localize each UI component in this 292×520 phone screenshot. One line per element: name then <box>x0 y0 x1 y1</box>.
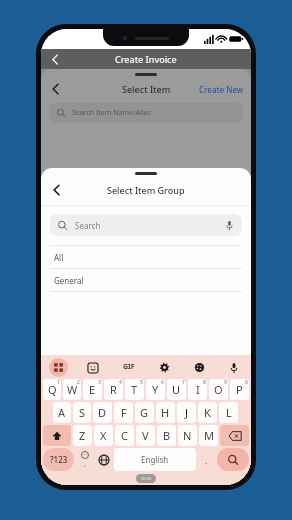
button[interactable]: Emoji <box>76 448 93 471</box>
staticText: I <box>196 382 200 397</box>
staticText: A <box>58 405 66 420</box>
button[interactable]: C <box>115 425 134 446</box>
staticText: 6 <box>161 379 164 386</box>
staticText: Search Item Name/Alias <box>72 108 151 118</box>
button[interactable]: Z <box>73 425 92 446</box>
button[interactable]: G <box>135 402 154 423</box>
staticText: N <box>183 428 192 443</box>
staticText: F <box>121 405 127 420</box>
button[interactable]: U <box>167 379 186 400</box>
button[interactable]: English <box>114 448 196 471</box>
staticText: General <box>54 275 84 286</box>
button[interactable]: D <box>93 402 112 423</box>
staticText: Select Item <box>122 83 171 95</box>
staticText: L <box>226 405 232 420</box>
button[interactable]: Backspace <box>220 425 249 446</box>
staticText: 3 <box>98 379 101 386</box>
button[interactable]: Create New <box>199 84 244 95</box>
button[interactable]: Keyboard modes <box>49 358 68 377</box>
staticText: , <box>84 459 86 469</box>
staticText: Select Item Group <box>107 184 185 196</box>
button[interactable]: Voice search <box>224 220 235 231</box>
button[interactable]: T <box>125 379 144 400</box>
staticText: 4 <box>119 379 122 386</box>
staticText: 1 <box>57 379 60 386</box>
staticText: V <box>142 428 149 443</box>
button[interactable]: X <box>94 425 113 446</box>
staticText: GIF <box>123 362 135 372</box>
button[interactable]: Change language <box>95 448 112 471</box>
staticText: R <box>110 382 117 397</box>
staticText: G <box>140 405 149 420</box>
staticText: H <box>161 405 170 420</box>
staticText: Z <box>79 428 86 443</box>
button[interactable]: Search <box>217 448 249 471</box>
button[interactable]: P <box>230 379 249 400</box>
staticText: 0 <box>245 379 248 386</box>
button[interactable]: ?123 <box>43 448 74 471</box>
staticText: 00:30 <box>141 476 152 481</box>
staticText: U <box>172 382 181 397</box>
button[interactable]: W <box>63 379 81 400</box>
staticText: Search <box>75 220 101 231</box>
button[interactable]: M <box>199 425 218 446</box>
staticText: English <box>141 454 169 465</box>
button[interactable]: N <box>178 425 197 446</box>
button[interactable]: All <box>41 246 251 268</box>
staticText: ?123 <box>50 454 68 465</box>
staticText: W <box>67 382 78 397</box>
button[interactable]: O <box>209 379 228 400</box>
staticText: All <box>54 252 64 263</box>
staticText: X <box>100 428 107 443</box>
button[interactable]: . <box>198 448 215 471</box>
button[interactable]: Theme <box>190 358 209 377</box>
button[interactable]: E <box>83 379 102 400</box>
staticText: 9 <box>224 379 227 386</box>
staticText: Y <box>152 382 159 397</box>
button[interactable]: J <box>177 402 196 423</box>
staticText: 7 <box>182 379 185 386</box>
button[interactable]: A <box>53 402 71 423</box>
button[interactable]: K <box>198 402 217 423</box>
button[interactable]: H <box>156 402 175 423</box>
staticText: S <box>79 405 86 420</box>
staticText: 5 <box>140 379 143 386</box>
staticText: K <box>204 405 211 420</box>
button[interactable]: R <box>104 379 123 400</box>
staticText: J <box>185 405 189 420</box>
staticText: 2 <box>77 379 80 386</box>
staticText: 8 <box>203 379 206 386</box>
button[interactable]: Shift <box>43 425 71 446</box>
button[interactable]: B <box>157 425 176 446</box>
staticText: B <box>163 428 171 443</box>
staticText: E <box>89 382 96 397</box>
staticText: . <box>205 454 208 466</box>
staticText: Q <box>48 382 57 397</box>
staticText: O <box>214 382 223 397</box>
button[interactable]: L <box>219 402 238 423</box>
button[interactable]: Settings <box>155 358 174 377</box>
button[interactable]: Stickers <box>83 358 102 377</box>
button[interactable]: S <box>73 402 91 423</box>
staticText: C <box>121 428 128 443</box>
button[interactable]: V <box>136 425 155 446</box>
button[interactable]: General <box>41 269 251 291</box>
button[interactable]: Back <box>50 180 71 200</box>
staticText: T <box>131 382 138 397</box>
staticText: D <box>98 405 107 420</box>
button[interactable]: Y <box>146 379 165 400</box>
staticText: P <box>236 382 243 397</box>
button[interactable]: F <box>114 402 133 423</box>
button[interactable]: I <box>188 379 207 400</box>
button[interactable]: Q <box>43 379 61 400</box>
staticText: M <box>204 428 214 443</box>
button[interactable]: GIF <box>118 356 140 378</box>
button[interactable]: Voice input <box>224 358 243 377</box>
staticText: Create Invoice <box>115 53 177 65</box>
button[interactable]: Search <box>50 214 242 236</box>
